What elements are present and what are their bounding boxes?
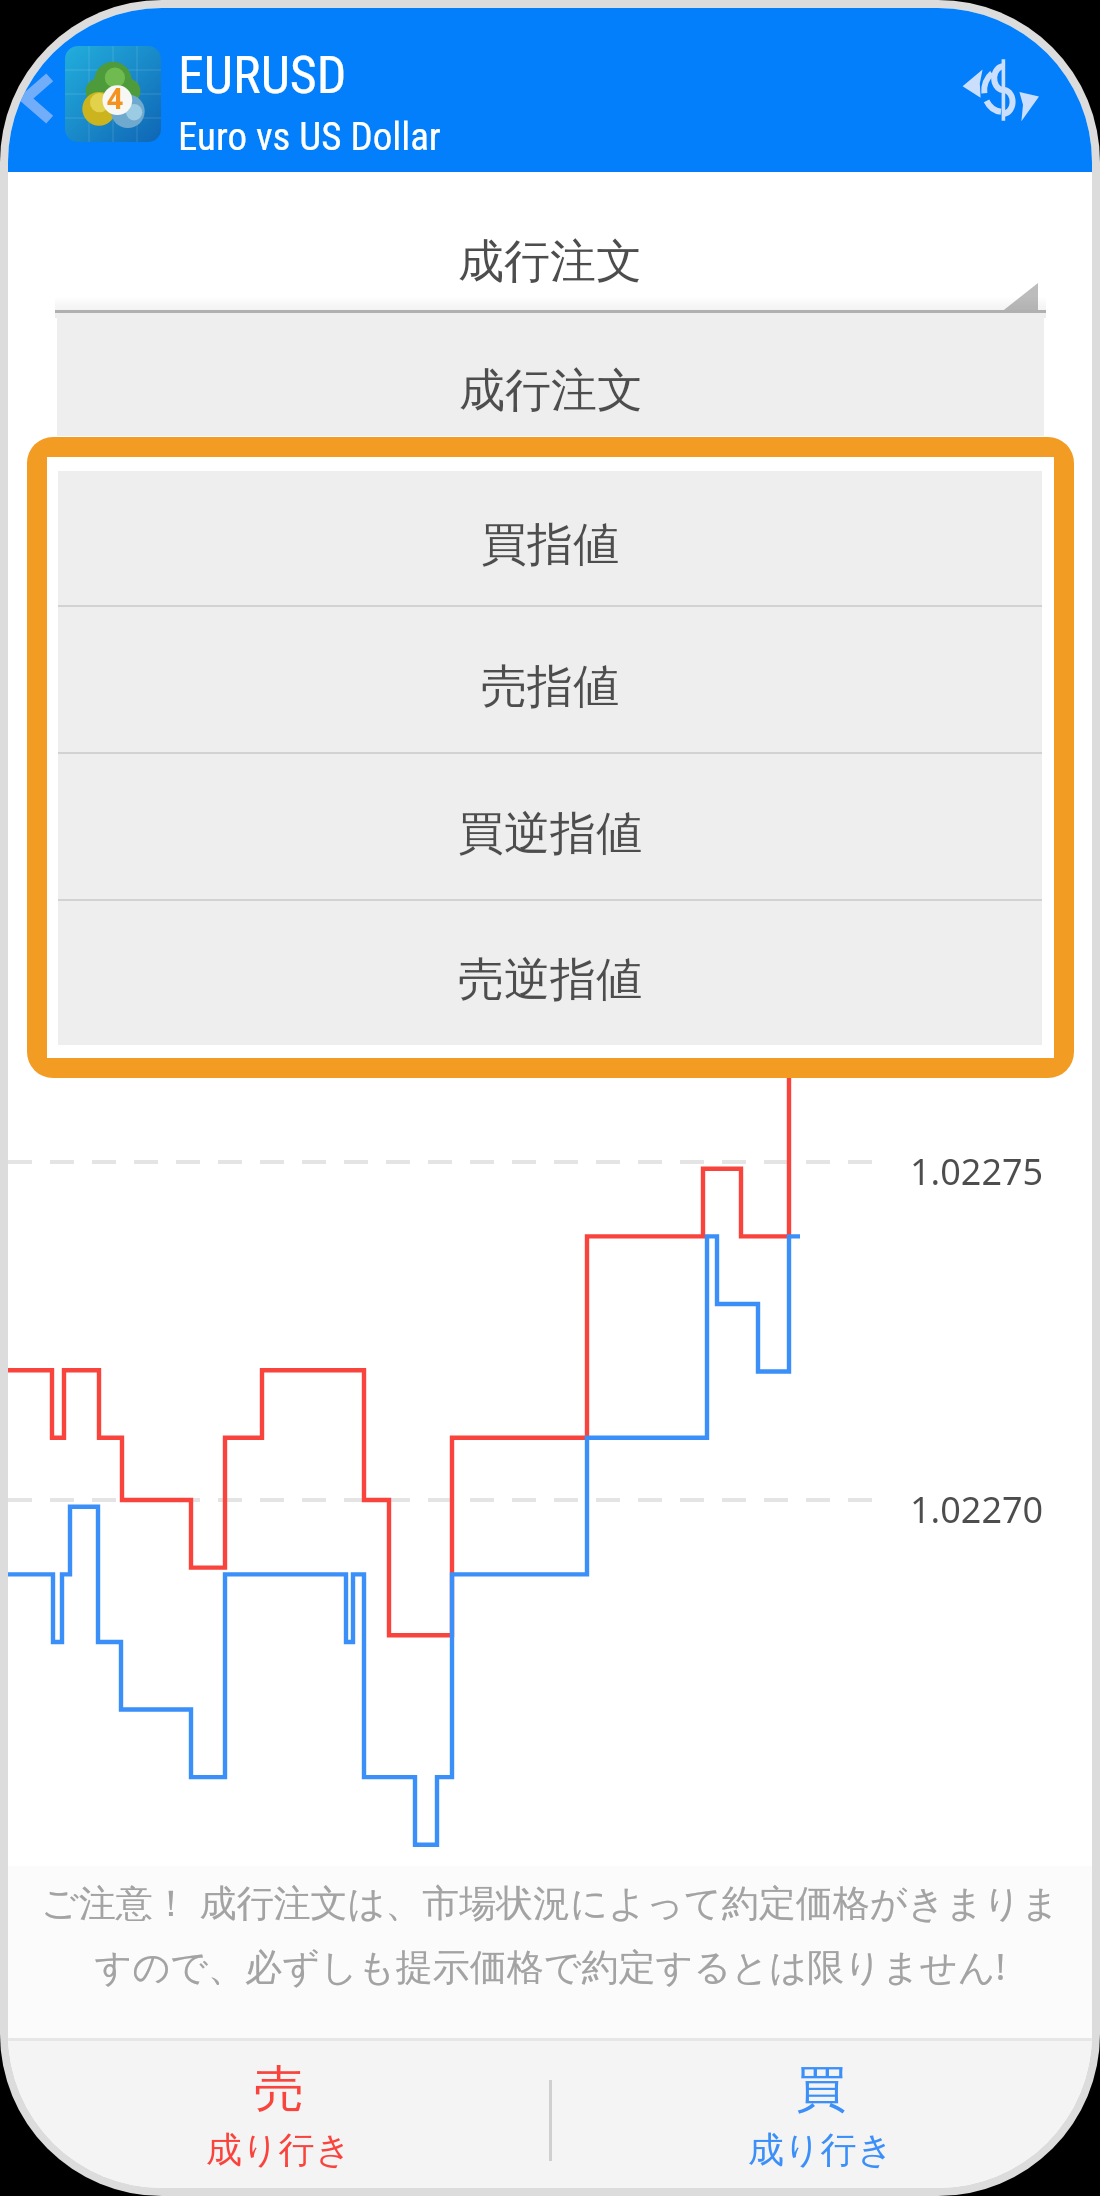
button[interactable]: 売逆指値 [58,901,1042,1045]
staticText: 売指値 [481,658,619,716]
button[interactable]: Switch quote [944,38,1054,142]
staticText: 1.02270 [910,1485,1044,1534]
staticText: EURUSD [178,45,347,106]
button[interactable]: 成行注文 [57,313,1044,436]
staticText: 買逆指値 [458,805,642,863]
button[interactable]: 成行注文 [8,172,1092,303]
staticText: 成り行き [206,2127,352,2172]
staticText: 買 [796,2058,846,2121]
staticText: 成行注文 [459,362,643,420]
staticText: 1.02275 [910,1147,1044,1196]
button[interactable]: 買逆指値 [58,754,1042,899]
staticText: 成り行き [748,2127,894,2172]
button[interactable]: 買 [550,2041,1092,2188]
button[interactable]: Back [8,58,70,122]
staticText: 売 [254,2058,304,2121]
staticText: 成行注文 [458,233,642,291]
staticText: ご注意！ 成行注文は、市場状況によって約定価格がきまりま すので、必ずしも提示価… [34,1876,1066,1991]
button[interactable]: 買指値 [58,471,1042,605]
staticText: 買指値 [481,516,619,574]
staticText: Euro vs US Dollar [178,114,441,160]
staticText: 売逆指値 [458,951,642,1009]
button[interactable]: 売指値 [58,607,1042,752]
button[interactable]: 売 [8,2041,550,2188]
staticText: 4 [107,79,124,117]
